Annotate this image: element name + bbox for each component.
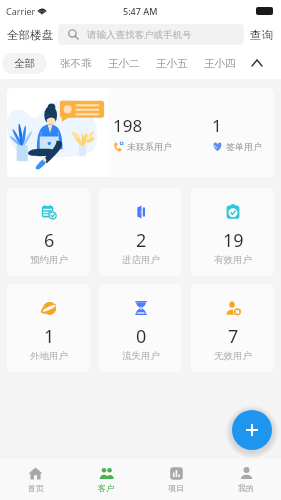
staticText: 项目 bbox=[168, 483, 184, 493]
button[interactable]: 全部 bbox=[2, 53, 47, 74]
staticText: 王小二 bbox=[108, 57, 140, 70]
button[interactable]: 王小五 bbox=[156, 57, 188, 70]
button[interactable]: 2 bbox=[99, 188, 182, 276]
button[interactable]: 项目 bbox=[141, 459, 211, 500]
staticText: 1 bbox=[44, 324, 55, 349]
button[interactable]: 王小二 bbox=[108, 57, 140, 70]
staticText: 外地用户 bbox=[30, 350, 68, 362]
staticText: 预约用户 bbox=[30, 254, 68, 266]
staticText: 王小五 bbox=[156, 57, 188, 70]
staticText: 5:47 AM bbox=[123, 5, 158, 17]
staticText: 王小四 bbox=[204, 57, 236, 70]
staticText: 流失用户 bbox=[122, 350, 160, 362]
button[interactable]: 查询 bbox=[250, 28, 273, 42]
staticText: 客户 bbox=[98, 483, 114, 493]
button[interactable]: Add customer bbox=[232, 410, 272, 450]
button[interactable]: 请输入查找客户或手机号 bbox=[58, 24, 244, 45]
button[interactable]: 张不乖 bbox=[60, 57, 92, 70]
staticText: 无效用户 bbox=[214, 350, 252, 362]
staticText: 有效用户 bbox=[214, 254, 252, 266]
button[interactable]: 全部楼盘 bbox=[7, 28, 53, 42]
button[interactable]: 王小四 bbox=[204, 57, 236, 70]
button[interactable]: 198 bbox=[7, 88, 274, 177]
staticText: Carrier bbox=[6, 5, 36, 17]
staticText: 首页 bbox=[28, 483, 44, 493]
button[interactable]: Collapse filters bbox=[249, 55, 265, 71]
staticText: 0 bbox=[136, 324, 147, 349]
staticText: 7 bbox=[228, 324, 239, 349]
staticText: 未联系用户 bbox=[127, 141, 172, 152]
button[interactable]: 首页 bbox=[0, 459, 71, 500]
staticText: 6 bbox=[44, 228, 55, 253]
staticText: 查询 bbox=[250, 28, 273, 42]
staticText: 签单用户 bbox=[226, 141, 262, 152]
button[interactable]: 0 bbox=[99, 284, 182, 372]
button[interactable]: 7 bbox=[191, 284, 274, 372]
button[interactable]: 19 bbox=[191, 188, 274, 276]
staticText: 进店用户 bbox=[122, 254, 160, 266]
staticText: 张不乖 bbox=[60, 57, 92, 70]
staticText: 19 bbox=[223, 228, 244, 253]
staticText: 1 bbox=[212, 114, 222, 137]
button[interactable]: 6 bbox=[7, 188, 90, 276]
button[interactable]: 客户 bbox=[71, 459, 141, 500]
button[interactable]: 我的 bbox=[211, 459, 281, 500]
button[interactable]: 1 bbox=[7, 284, 90, 372]
staticText: 198 bbox=[113, 114, 143, 137]
staticText: 请输入查找客户或手机号 bbox=[87, 29, 192, 41]
staticText: 全部 bbox=[14, 57, 35, 70]
staticText: 全部楼盘 bbox=[7, 28, 53, 42]
staticText: 我的 bbox=[238, 483, 254, 493]
staticText: 2 bbox=[136, 228, 147, 253]
